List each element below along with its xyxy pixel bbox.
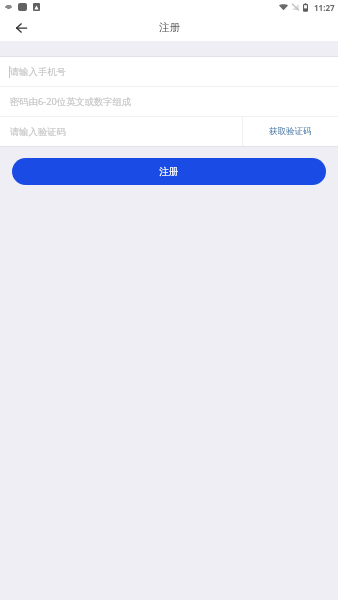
staticText: 获取验证码	[269, 126, 312, 137]
button[interactable]: Back	[16, 14, 42, 41]
staticText: 注册	[159, 166, 179, 178]
staticText: 请输入手机号	[10, 66, 66, 78]
staticText: 11:27	[314, 2, 335, 13]
staticText: 注册	[159, 21, 180, 34]
button[interactable]: 请输入手机号	[0, 57, 338, 86]
staticText: 密码由6-20位英文或数字组成	[10, 95, 132, 108]
staticText: 请输入验证码	[10, 126, 66, 138]
button[interactable]: 注册	[12, 158, 326, 185]
button[interactable]: 获取验证码	[243, 117, 338, 146]
button[interactable]: 密码由6-20位英文或数字组成	[0, 87, 338, 116]
button[interactable]: 请输入验证码	[0, 117, 242, 146]
